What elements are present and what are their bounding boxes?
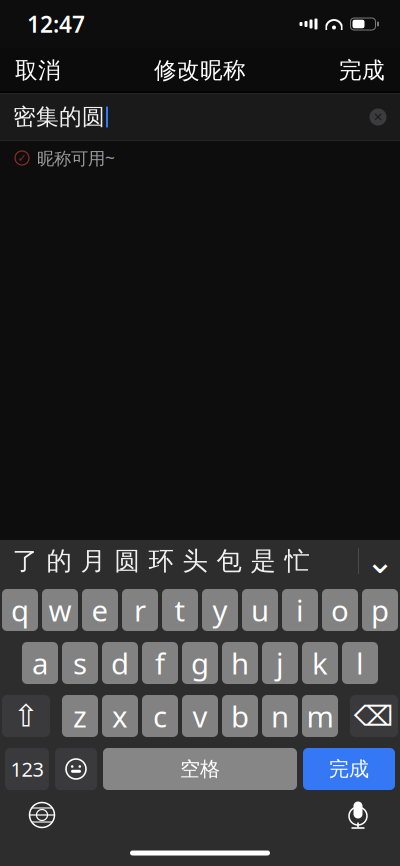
button[interactable]: 忙 xyxy=(280,541,314,581)
button[interactable]: Delete xyxy=(350,695,398,737)
staticText: 123 xyxy=(10,756,43,782)
staticText: ⌄ xyxy=(365,541,394,581)
button[interactable]: o xyxy=(322,589,358,631)
button[interactable]: c xyxy=(142,695,178,737)
button[interactable]: t xyxy=(162,589,198,631)
button[interactable]: p xyxy=(362,589,398,631)
staticText: p xyxy=(371,590,389,629)
staticText: 密集的圆 xyxy=(13,103,105,131)
staticText: 是 xyxy=(250,545,275,576)
staticText: 完成 xyxy=(329,757,369,781)
staticText: ⌫ xyxy=(354,700,394,732)
button[interactable]: 月 xyxy=(76,541,110,581)
button[interactable]: 头 xyxy=(178,541,212,581)
button[interactable]: Clear text xyxy=(363,102,393,132)
staticText: l xyxy=(356,643,364,682)
button[interactable]: 包 xyxy=(212,541,246,581)
button[interactable]: 完成 xyxy=(303,748,395,790)
button[interactable]: Emoji xyxy=(55,748,97,790)
staticText: x xyxy=(112,696,128,735)
button[interactable]: j xyxy=(262,642,298,684)
staticText: a xyxy=(32,643,48,682)
staticText: n xyxy=(271,696,289,735)
staticText: z xyxy=(73,696,87,735)
button[interactable]: u xyxy=(242,589,278,631)
staticText: 的 xyxy=(46,545,71,576)
button[interactable]: 环 xyxy=(144,541,178,581)
button[interactable]: k xyxy=(302,642,338,684)
staticText: f xyxy=(155,643,165,682)
staticText: y xyxy=(212,590,227,629)
staticText: w xyxy=(48,590,71,629)
staticText: q xyxy=(11,590,29,629)
staticText: 昵称可用~ xyxy=(37,146,115,169)
staticText: 完成 xyxy=(339,57,385,84)
staticText: i xyxy=(296,590,304,629)
staticText: u xyxy=(251,590,269,629)
button[interactable]: s xyxy=(62,642,98,684)
button[interactable]: Change keyboard xyxy=(20,793,64,837)
staticText: e xyxy=(91,590,108,629)
button[interactable]: x xyxy=(102,695,138,737)
button[interactable]: Dictation xyxy=(336,793,380,837)
button[interactable]: f xyxy=(142,642,178,684)
staticText: ✕ xyxy=(373,110,383,124)
button[interactable]: h xyxy=(222,642,258,684)
button[interactable]: w xyxy=(42,589,78,631)
staticText: b xyxy=(231,696,249,735)
button[interactable]: r xyxy=(122,589,158,631)
staticText: v xyxy=(192,696,207,735)
staticText: 修改昵称 xyxy=(154,57,246,84)
button[interactable]: 123 xyxy=(5,748,49,790)
staticText: j xyxy=(276,643,284,682)
staticText: 空格 xyxy=(180,757,220,781)
staticText: o xyxy=(331,590,349,629)
staticText: s xyxy=(73,643,87,682)
staticText: h xyxy=(231,643,249,682)
button[interactable]: z xyxy=(62,695,98,737)
button[interactable]: a xyxy=(22,642,58,684)
button[interactable]: d xyxy=(102,642,138,684)
button[interactable]: 完成 xyxy=(325,48,399,93)
button[interactable]: l xyxy=(342,642,378,684)
button[interactable]: v xyxy=(182,695,218,737)
staticText: ⇧ xyxy=(13,699,39,733)
staticText: c xyxy=(153,696,167,735)
button[interactable]: Shift xyxy=(2,695,50,737)
button[interactable]: g xyxy=(182,642,218,684)
staticText: r xyxy=(134,590,146,629)
staticText: 环 xyxy=(148,545,173,576)
staticText: 包 xyxy=(216,545,241,576)
button[interactable]: i xyxy=(282,589,318,631)
staticText: 月 xyxy=(80,545,105,576)
button[interactable]: Hide candidates xyxy=(359,541,400,581)
staticText: 取消 xyxy=(15,57,61,84)
staticText: t xyxy=(174,590,185,629)
button[interactable]: b xyxy=(222,695,258,737)
button[interactable]: m xyxy=(302,695,338,737)
staticText: m xyxy=(306,696,333,735)
staticText: 忙 xyxy=(284,545,309,576)
staticText: ✓ xyxy=(17,152,26,164)
button[interactable]: q xyxy=(2,589,38,631)
button[interactable]: 的 xyxy=(42,541,76,581)
staticText: 圆 xyxy=(114,545,139,576)
button[interactable]: 空格 xyxy=(103,748,297,790)
staticText: d xyxy=(111,643,129,682)
button[interactable]: n xyxy=(262,695,298,737)
button[interactable]: 圆 xyxy=(110,541,144,581)
button[interactable]: y xyxy=(202,589,238,631)
staticText: 头 xyxy=(182,545,207,576)
button[interactable]: e xyxy=(82,589,118,631)
button[interactable]: 取消 xyxy=(1,48,75,93)
staticText: 了 xyxy=(12,545,37,576)
staticText: g xyxy=(191,643,209,682)
staticText: k xyxy=(312,643,328,682)
button[interactable]: 了 xyxy=(8,541,42,581)
button[interactable]: 是 xyxy=(246,541,280,581)
staticText: 12:47 xyxy=(27,9,85,39)
